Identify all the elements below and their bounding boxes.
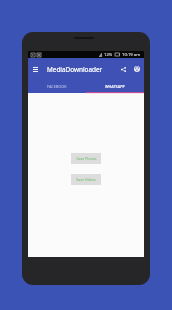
button[interactable]: FACEBOOK [28,80,86,93]
button[interactable]: Open navigation menu [28,58,43,80]
staticText: Save Videos [76,177,96,182]
button[interactable]: WHATSAPP [86,80,144,93]
staticText: Save Photos [76,156,97,161]
button[interactable]: Save Photos [71,153,101,164]
staticText: 12% [104,52,113,58]
staticText: FACEBOOK [47,84,67,89]
staticText: MediaDownloader [47,65,103,74]
staticText: 10:19 am [122,52,141,58]
staticText: WHATSAPP [105,84,125,89]
button[interactable]: Share [116,58,130,80]
button[interactable]: Help [130,58,144,80]
button[interactable]: Save Videos [71,174,101,185]
